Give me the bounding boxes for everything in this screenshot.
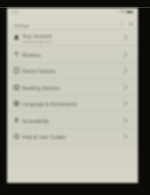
staticText: Your Account — [22, 33, 52, 40]
button[interactable]: Wireless — [7, 46, 138, 63]
staticText: user@example.com — [22, 40, 52, 44]
staticText: Reading Options — [22, 85, 60, 92]
staticText: Language & Dictionaries — [22, 101, 78, 108]
button[interactable]: Language & Dictionaries — [7, 95, 138, 112]
staticText: 10:37 — [11, 11, 19, 15]
staticText: Help & User Guides — [22, 134, 66, 141]
staticText: Device Options — [22, 68, 56, 75]
button[interactable]: Help & User Guides — [7, 128, 138, 145]
button[interactable]: Reading Options — [7, 79, 138, 96]
staticText: Settings — [14, 23, 29, 28]
button[interactable]: Your Account — [7, 29, 138, 46]
button[interactable]: Device Options — [7, 62, 138, 79]
staticText: 99% — [120, 10, 126, 14]
button[interactable]: Close — [127, 18, 134, 30]
staticText: Wireless — [22, 52, 41, 59]
button[interactable]: Accessibility — [7, 112, 138, 129]
staticText: Accessibility — [22, 118, 50, 125]
button[interactable]: More options — [118, 18, 125, 30]
